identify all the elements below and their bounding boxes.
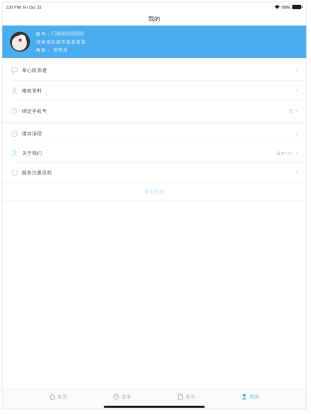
button[interactable]: 关于我们 — [2, 144, 306, 163]
staticText: 业务 — [121, 394, 131, 399]
staticText: 角色： 管理员 — [36, 47, 68, 53]
button[interactable]: 修改资料 — [2, 81, 306, 101]
button[interactable]: 退出登录 — [2, 183, 306, 201]
button[interactable]: 掌心联系通 — [2, 60, 306, 81]
button[interactable]: 业务 — [90, 390, 154, 404]
staticText: 缓存清理 — [22, 131, 42, 137]
staticText: 2:31 PM Fri Oct 23 — [6, 4, 41, 10]
staticText: 100% — [280, 4, 291, 10]
staticText: 账号：13800000000 — [36, 31, 84, 37]
staticText: 修改资料 — [22, 88, 42, 94]
staticText: 我的 — [148, 15, 160, 22]
button[interactable]: 缓存清理 — [2, 124, 306, 144]
staticText: 版本1.0.1 — [277, 150, 293, 156]
button[interactable]: 账号：13800000000 — [2, 25, 306, 58]
staticText: 资讯 — [185, 394, 195, 399]
button[interactable]: 服务注册流程 — [2, 163, 306, 182]
button[interactable]: 首页 — [26, 390, 90, 404]
staticText: 掌心联系通 — [22, 67, 47, 73]
staticText: 首页 — [57, 394, 67, 399]
staticText: 我的 — [249, 394, 259, 399]
button[interactable]: 资讯 — [154, 390, 218, 404]
staticText: 河南省许昌市某某某某 — [36, 39, 86, 45]
button[interactable]: 我的 — [218, 390, 282, 404]
staticText: 绑定手机号 — [22, 108, 47, 114]
staticText: 退出登录 — [144, 189, 164, 195]
staticText: 无 — [289, 109, 293, 114]
staticText: 服务注册流程 — [22, 170, 52, 176]
button[interactable]: 绑定手机号 — [2, 101, 306, 121]
staticText: 关于我们 — [22, 150, 42, 156]
